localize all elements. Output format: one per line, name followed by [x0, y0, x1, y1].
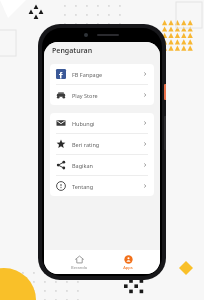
- staticText: Pengaturan: [52, 46, 93, 56]
- button[interactable]: FB Fanpage: [50, 64, 154, 84]
- button[interactable]: Beranda: [63, 253, 95, 272]
- staticText: Beranda: [71, 265, 87, 270]
- staticText: Apps: [123, 265, 133, 270]
- button[interactable]: Apps: [115, 253, 141, 272]
- button[interactable]: Play Store: [50, 85, 154, 105]
- button[interactable]: Tentang: [50, 176, 154, 196]
- staticText: Bagikan: [72, 162, 93, 169]
- staticText: FB Fanpage: [72, 71, 103, 78]
- staticText: Hubungi: [72, 120, 95, 127]
- staticText: Play Store: [72, 92, 98, 99]
- staticText: Beri rating: [72, 141, 100, 148]
- button[interactable]: Beri rating: [50, 134, 154, 154]
- staticText: Tentang: [72, 183, 94, 190]
- button[interactable]: Hubungi: [50, 113, 154, 133]
- button[interactable]: Bagikan: [50, 155, 154, 175]
